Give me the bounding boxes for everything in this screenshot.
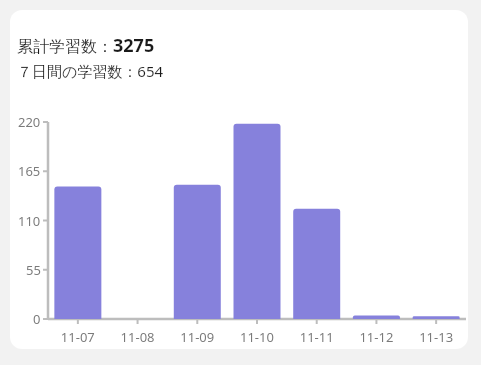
button[interactable]: Study statistics chart card: [10, 10, 468, 349]
